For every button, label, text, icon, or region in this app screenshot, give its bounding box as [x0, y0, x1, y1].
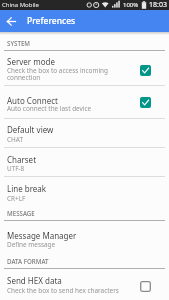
staticText: MESSAGE — [7, 209, 35, 217]
staticText: Line break — [7, 183, 47, 194]
button[interactable]: Send HEX data — [0, 269, 169, 300]
button[interactable]: Line break — [0, 177, 169, 206]
staticText: Auto Connect — [7, 95, 58, 106]
staticText: Check the box to access incoming connect… — [7, 66, 108, 82]
staticText: Send HEX data — [7, 275, 62, 286]
staticText: 100% — [123, 1, 139, 9]
button[interactable] — [0, 10, 22, 32]
button[interactable]: Server mode — [0, 51, 169, 86]
staticText: SYSTEM — [7, 39, 31, 47]
staticText: Check the box to send hex characters — [7, 286, 119, 295]
staticText: CR+LF — [7, 194, 26, 203]
staticText: Preferences — [27, 15, 76, 27]
staticText: Auto connect the last device — [7, 104, 92, 113]
staticText: 18:03 — [149, 0, 167, 10]
button[interactable]: Charset — [0, 148, 169, 177]
staticText: Server mode — [7, 56, 55, 67]
button[interactable]: Auto Connect — [0, 86, 169, 119]
staticText: CHAT — [7, 135, 23, 144]
staticText: Charset — [7, 154, 37, 165]
staticText: DATA FORMAT — [7, 257, 49, 265]
staticText: Define message — [7, 240, 56, 249]
button[interactable]: Message Manager — [0, 221, 169, 253]
button[interactable]: Default view — [0, 119, 169, 148]
staticText: Message Manager — [7, 230, 77, 241]
staticText: Default view — [7, 124, 54, 135]
staticText: China Mobile — [2, 1, 39, 9]
staticText: UTF-8 — [7, 164, 25, 173]
